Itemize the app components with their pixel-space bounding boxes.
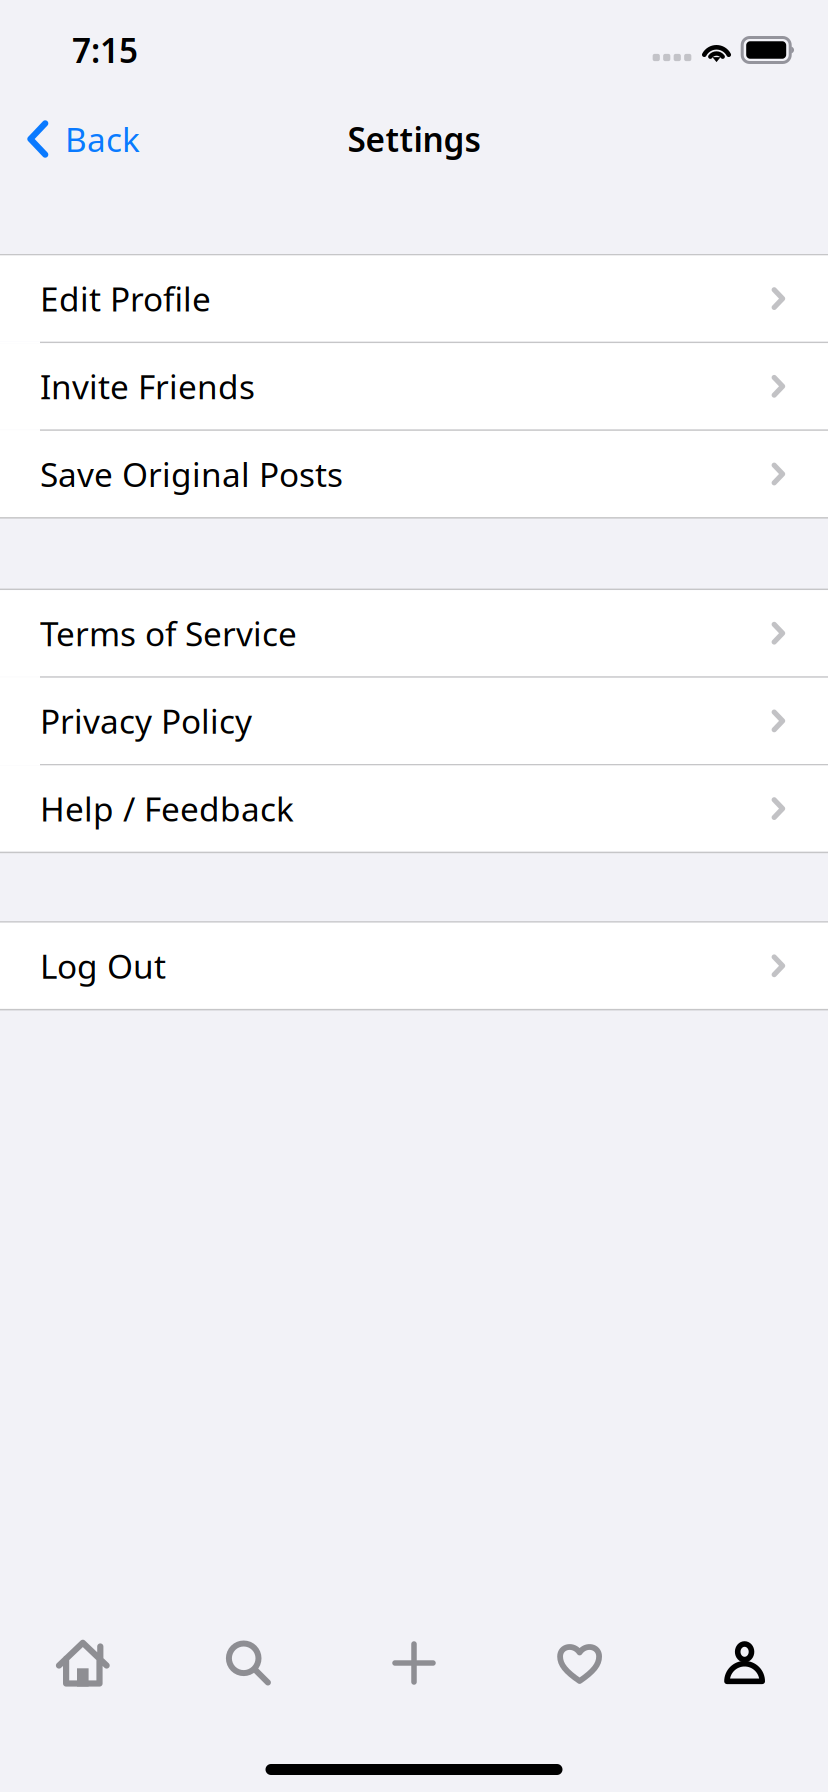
staticText: Edit Profile xyxy=(40,276,211,321)
staticText: Settings xyxy=(347,117,480,161)
staticText: Privacy Policy xyxy=(40,699,252,743)
button[interactable]: Back xyxy=(0,100,160,178)
button[interactable]: Edit Profile xyxy=(0,255,828,342)
staticText: Help / Feedback xyxy=(40,786,294,831)
staticText: 7:15 xyxy=(72,28,138,72)
button[interactable]: Log Out xyxy=(0,923,828,1009)
button[interactable]: Home xyxy=(0,1620,166,1706)
staticText: Back xyxy=(65,117,140,161)
button[interactable]: New Post xyxy=(331,1620,497,1706)
button[interactable]: Profile xyxy=(662,1620,828,1706)
button[interactable]: Invite Friends xyxy=(0,343,828,429)
button[interactable]: Activity xyxy=(497,1620,662,1706)
button[interactable]: Privacy Policy xyxy=(0,678,828,764)
staticText: Save Original Posts xyxy=(40,452,343,496)
staticText: Terms of Service xyxy=(40,611,297,655)
staticText: Log Out xyxy=(40,944,166,988)
button[interactable]: Terms of Service xyxy=(0,590,828,676)
button[interactable]: Search xyxy=(166,1620,331,1706)
staticText: Invite Friends xyxy=(40,364,255,408)
button[interactable]: Save Original Posts xyxy=(0,431,828,517)
button[interactable]: Help / Feedback xyxy=(0,765,828,852)
